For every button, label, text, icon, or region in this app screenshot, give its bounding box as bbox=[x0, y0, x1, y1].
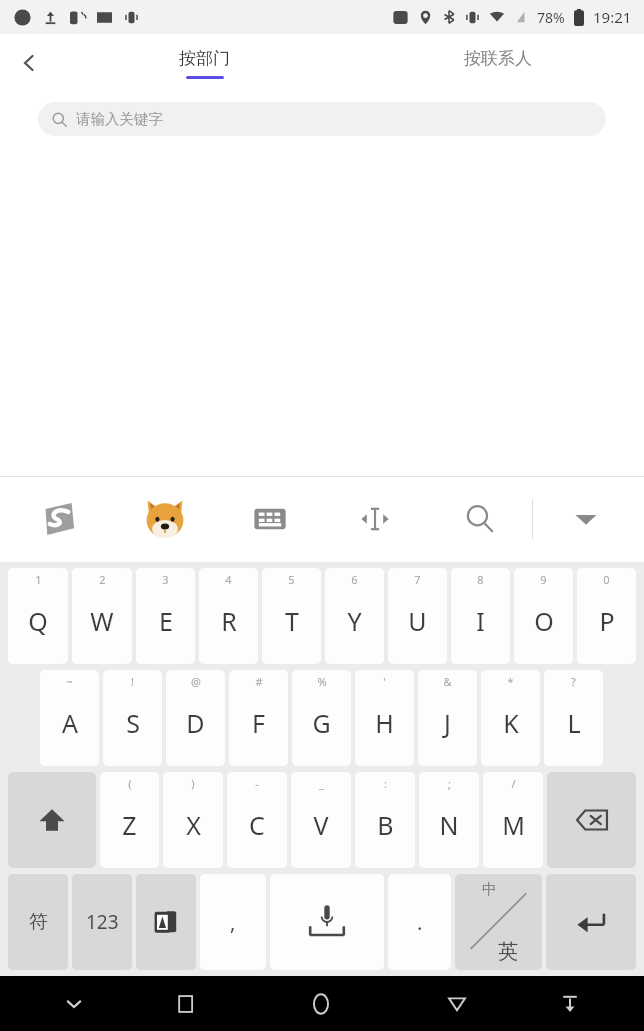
button[interactable]: ? bbox=[544, 670, 603, 766]
button[interactable]: 0 bbox=[577, 568, 636, 664]
staticText: K bbox=[503, 706, 519, 740]
button[interactable]: Search bbox=[427, 476, 532, 562]
button[interactable]: Recents bbox=[130, 976, 242, 1031]
staticText: L bbox=[567, 706, 581, 740]
staticText: 5 bbox=[288, 572, 295, 587]
staticText: F bbox=[252, 706, 265, 740]
staticText: ' bbox=[383, 674, 386, 689]
button[interactable]: Keyboard layout bbox=[217, 476, 322, 562]
staticText: ~ bbox=[66, 674, 73, 689]
staticText: ? bbox=[571, 674, 576, 689]
staticText: & bbox=[443, 674, 452, 689]
staticText: - bbox=[255, 776, 259, 791]
button[interactable]: Input language bbox=[136, 874, 196, 970]
staticText: 3 bbox=[162, 572, 169, 587]
button[interactable]: * bbox=[481, 670, 540, 766]
button[interactable]: @ bbox=[166, 670, 225, 766]
button[interactable]: 7 bbox=[388, 568, 447, 664]
button[interactable]: Hide keyboard bbox=[18, 976, 130, 1031]
button[interactable]: Sogou input bbox=[6, 476, 112, 562]
staticText: 123 bbox=[86, 909, 119, 935]
button[interactable]: . bbox=[388, 874, 451, 970]
staticText: 中 bbox=[482, 880, 497, 899]
button[interactable]: 按联系人 bbox=[351, 34, 644, 92]
staticText: 2 bbox=[99, 572, 106, 587]
button[interactable]: / bbox=[483, 772, 543, 868]
staticText: H bbox=[375, 706, 394, 740]
staticText: 78% bbox=[537, 8, 565, 27]
staticText: , bbox=[230, 909, 236, 936]
button[interactable]: 8 bbox=[451, 568, 510, 664]
button[interactable]: 符 bbox=[8, 874, 68, 970]
staticText: ! bbox=[131, 674, 134, 689]
staticText: ( bbox=[128, 776, 132, 791]
button[interactable]: ; bbox=[419, 772, 479, 868]
button[interactable]: Move cursor bbox=[322, 476, 427, 562]
button[interactable]: 2 bbox=[72, 568, 132, 664]
button[interactable]: ( bbox=[100, 772, 159, 868]
button[interactable]: 123 bbox=[72, 874, 132, 970]
button[interactable]: _ bbox=[291, 772, 351, 868]
staticText: * bbox=[507, 674, 514, 689]
button[interactable]: ' bbox=[355, 670, 414, 766]
button[interactable]: 6 bbox=[325, 568, 384, 664]
staticText: 8 bbox=[477, 572, 484, 587]
button[interactable]: Enter bbox=[546, 874, 636, 970]
staticText: G bbox=[312, 706, 331, 740]
staticText: _ bbox=[319, 776, 324, 791]
button[interactable]: Space bbox=[270, 874, 384, 970]
button[interactable]: 1 bbox=[8, 568, 68, 664]
staticText: % bbox=[317, 674, 327, 689]
staticText: B bbox=[377, 808, 394, 842]
button[interactable]: - bbox=[227, 772, 287, 868]
staticText: U bbox=[408, 604, 427, 638]
button[interactable]: Back bbox=[0, 34, 58, 92]
staticText: W bbox=[90, 604, 114, 638]
button[interactable]: & bbox=[418, 670, 477, 766]
staticText: ) bbox=[191, 776, 195, 791]
staticText: X bbox=[186, 808, 201, 842]
staticText: 英 bbox=[498, 939, 518, 964]
button[interactable]: Home bbox=[242, 976, 400, 1031]
staticText: J bbox=[444, 706, 451, 740]
staticText: 按部门 bbox=[179, 48, 230, 69]
button[interactable]: % bbox=[292, 670, 351, 766]
staticText: 0 bbox=[603, 572, 610, 587]
button[interactable]: 请输入关键字 bbox=[38, 102, 606, 136]
staticText: I bbox=[476, 604, 485, 638]
staticText: 6 bbox=[351, 572, 358, 587]
button[interactable]: Chinese English toggle bbox=[455, 874, 542, 970]
staticText: Q bbox=[28, 604, 48, 638]
button[interactable]: 4 bbox=[199, 568, 258, 664]
staticText: @ bbox=[191, 674, 201, 689]
button[interactable]: Minimize bbox=[513, 976, 626, 1031]
staticText: M bbox=[502, 808, 525, 842]
staticText: 符 bbox=[29, 910, 48, 934]
button[interactable]: # bbox=[229, 670, 288, 766]
staticText: / bbox=[511, 776, 516, 791]
staticText: T bbox=[285, 604, 299, 638]
button[interactable]: Backspace bbox=[547, 772, 636, 868]
button[interactable]: : bbox=[355, 772, 415, 868]
button[interactable]: 5 bbox=[262, 568, 321, 664]
button[interactable]: 按部门 bbox=[58, 34, 351, 92]
button[interactable]: ~ bbox=[40, 670, 99, 766]
button[interactable]: ) bbox=[163, 772, 223, 868]
staticText: C bbox=[249, 808, 265, 842]
button[interactable]: Back bbox=[400, 976, 513, 1031]
button[interactable]: , bbox=[200, 874, 266, 970]
button[interactable]: ! bbox=[103, 670, 162, 766]
button[interactable]: Hide keyboard bbox=[533, 476, 638, 562]
staticText: V bbox=[313, 808, 329, 842]
staticText: D bbox=[186, 706, 205, 740]
button[interactable]: Shift bbox=[8, 772, 96, 868]
staticText: O bbox=[534, 604, 554, 638]
staticText: 请输入关键字 bbox=[76, 110, 163, 128]
staticText: R bbox=[221, 604, 237, 638]
staticText: 按联系人 bbox=[464, 48, 532, 69]
staticText: ; bbox=[448, 776, 451, 791]
staticText: # bbox=[255, 674, 263, 689]
button[interactable]: 9 bbox=[514, 568, 573, 664]
button[interactable]: Emoji bbox=[112, 476, 217, 562]
button[interactable]: 3 bbox=[136, 568, 195, 664]
